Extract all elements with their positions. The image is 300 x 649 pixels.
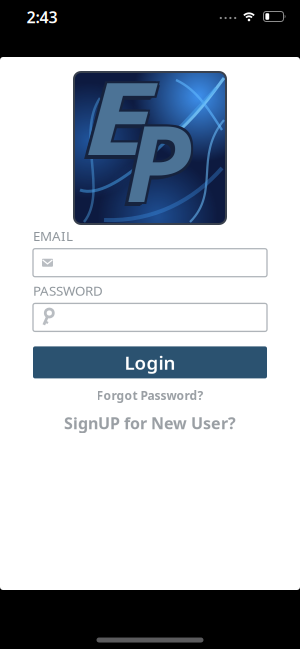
staticText: E — [93, 51, 148, 185]
staticText: P — [123, 93, 188, 234]
staticText: E — [91, 49, 146, 183]
staticText: P — [127, 92, 192, 234]
staticText: E — [93, 47, 148, 181]
staticText: P — [127, 88, 192, 230]
staticText: Login — [124, 350, 175, 375]
staticText: Forgot Password? — [96, 387, 203, 403]
button[interactable]: SignUP for New User? — [64, 412, 236, 433]
staticText: P — [125, 90, 190, 232]
staticText: 2:43 — [26, 6, 57, 28]
staticText: SignUP for New User? — [64, 412, 236, 433]
staticText: E — [87, 53, 142, 187]
staticText: EMAIL — [33, 227, 73, 245]
button[interactable]: Login — [33, 346, 267, 378]
staticText: PASSWORD — [33, 282, 103, 299]
staticText: E — [89, 51, 144, 186]
staticText: E — [89, 47, 144, 181]
button[interactable]: Forgot Password? — [96, 387, 203, 403]
staticText: P — [121, 94, 186, 236]
staticText: P — [123, 88, 188, 230]
